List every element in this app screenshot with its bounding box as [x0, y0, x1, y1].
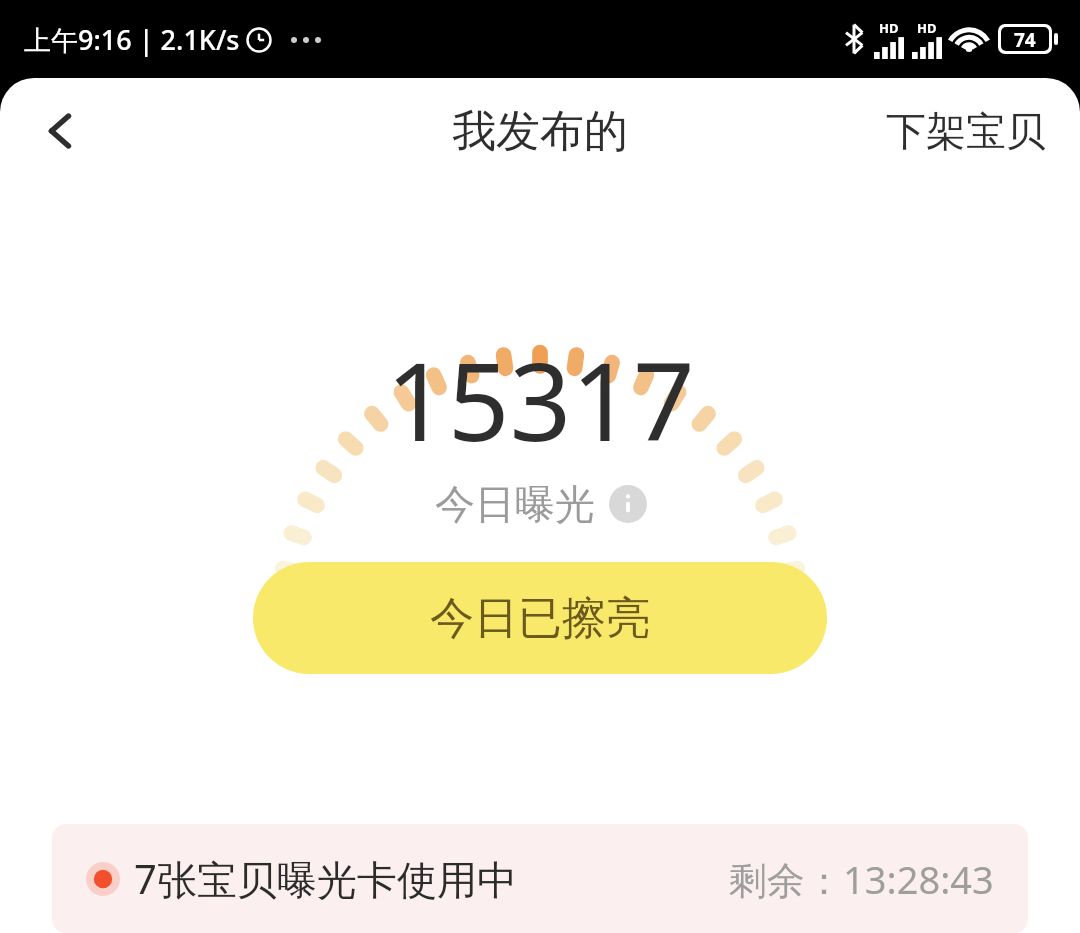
- button[interactable]: 下架宝贝: [876, 94, 1056, 168]
- staticText: 剩余：13:28:43: [729, 853, 994, 905]
- button[interactable]: 曝光说明: [609, 485, 647, 523]
- staticText: HD: [879, 19, 899, 37]
- button[interactable]: 返回: [22, 92, 100, 170]
- staticText: 74: [1014, 27, 1036, 51]
- staticText: 15317: [386, 326, 695, 473]
- staticText: 今日已擦亮: [430, 591, 650, 646]
- button[interactable]: 今日已擦亮: [253, 562, 827, 674]
- button[interactable]: 7张宝贝曝光卡使用中: [52, 824, 1028, 933]
- staticText: 7张宝贝曝光卡使用中: [134, 851, 517, 906]
- staticText: 下架宝贝: [886, 106, 1046, 156]
- staticText: 我发布的: [452, 104, 628, 159]
- staticText: 上午9:16 | 2.1K/s: [24, 21, 240, 58]
- staticText: HD: [917, 19, 937, 37]
- staticText: 今日曝光: [435, 479, 595, 529]
